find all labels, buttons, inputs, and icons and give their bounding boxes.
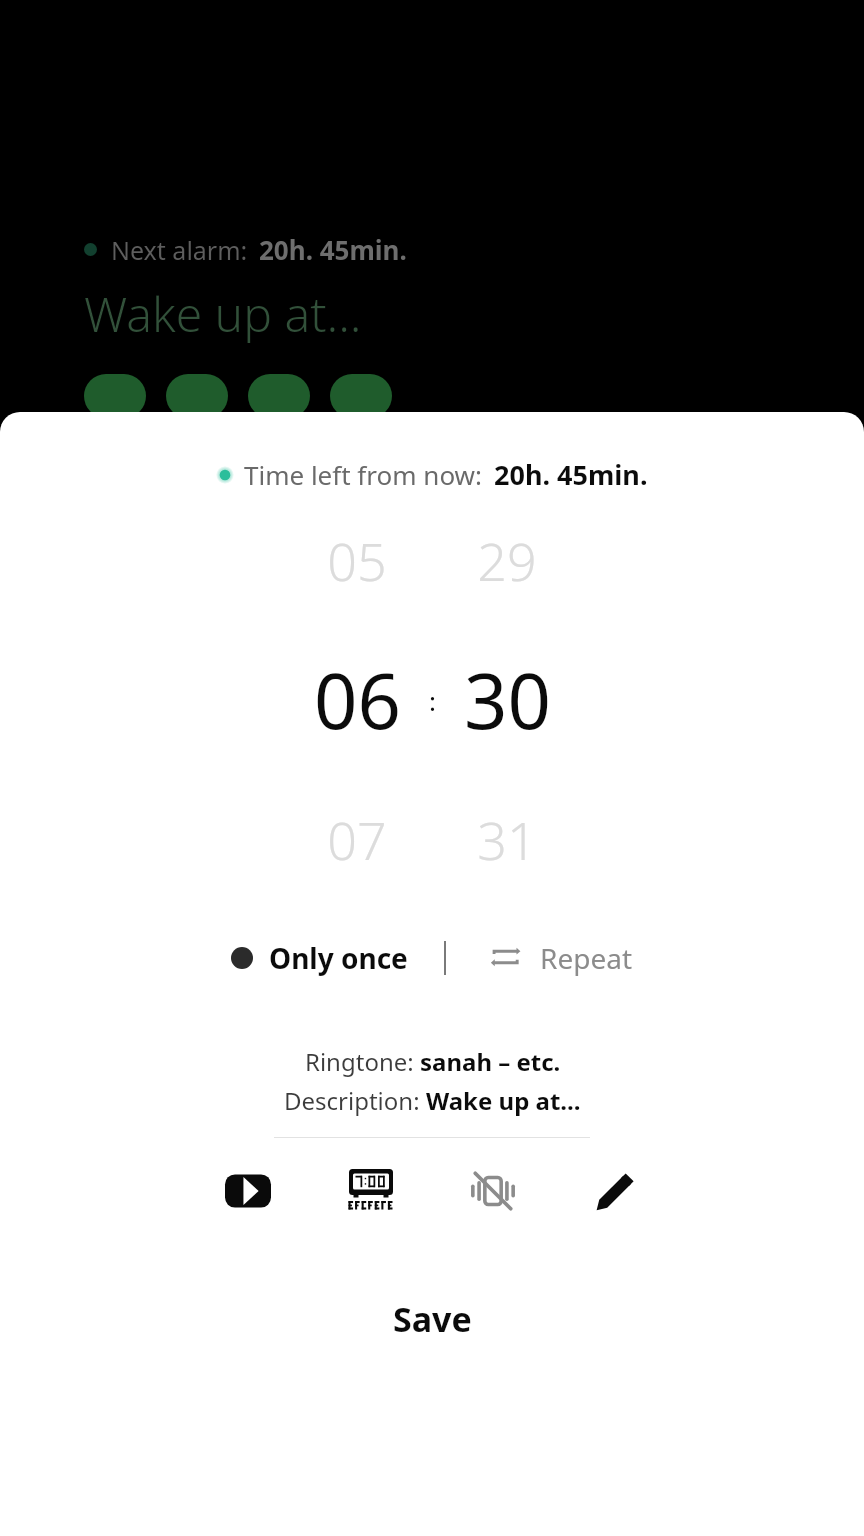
button[interactable]: Repeat bbox=[484, 933, 639, 983]
button[interactable]: 29 bbox=[477, 525, 537, 596]
button[interactable]: Ringtone: bbox=[305, 1045, 561, 1078]
staticText: : bbox=[429, 683, 436, 718]
button[interactable]: 07 bbox=[327, 804, 387, 875]
button[interactable]: 31 bbox=[477, 804, 537, 875]
staticText: Wake up at... bbox=[426, 1084, 581, 1117]
button[interactable]: 05 bbox=[327, 525, 387, 596]
button[interactable]: Vibration off bbox=[462, 1160, 524, 1222]
button[interactable]: Description: bbox=[284, 1084, 581, 1117]
button[interactable]: 06 bbox=[314, 648, 401, 752]
staticText: 20h. 45min. bbox=[259, 232, 407, 267]
staticText: sanah – etc. bbox=[420, 1045, 561, 1078]
staticText: Next alarm: bbox=[111, 233, 248, 267]
button[interactable]: Only once bbox=[225, 933, 414, 983]
button[interactable]: YouTube ringtone bbox=[217, 1160, 279, 1222]
staticText: Time left from now: bbox=[244, 457, 483, 492]
staticText: Repeat bbox=[540, 939, 633, 977]
button[interactable]: Default alarm sound bbox=[340, 1160, 402, 1222]
button[interactable]: Save bbox=[353, 1282, 512, 1356]
staticText: Only once bbox=[269, 939, 408, 977]
button[interactable]: Edit description bbox=[585, 1160, 647, 1222]
staticText: Wake up at... bbox=[84, 281, 362, 346]
staticText: Ringtone: bbox=[305, 1045, 420, 1078]
staticText: 20h. 45min. bbox=[494, 456, 648, 493]
staticText: Description: bbox=[284, 1084, 426, 1117]
staticText: Save bbox=[393, 1296, 472, 1342]
button[interactable]: 30 bbox=[464, 648, 551, 752]
